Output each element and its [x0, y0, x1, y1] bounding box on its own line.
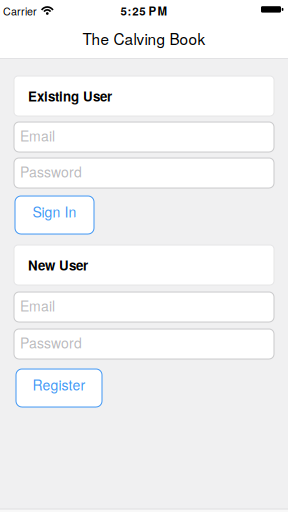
staticText: Password — [20, 161, 82, 181]
staticText: 5 — [120, 3, 126, 19]
staticText: P — [149, 3, 157, 19]
staticText: : — [127, 3, 131, 19]
staticText: Sign In — [32, 201, 76, 221]
staticText: Email — [20, 295, 55, 315]
button[interactable]: Email — [14, 292, 274, 322]
staticText: Password — [20, 332, 82, 352]
staticText: Email — [20, 125, 55, 145]
staticText: 5 — [139, 3, 145, 19]
button[interactable]: Register — [16, 369, 102, 407]
button[interactable]: Sign In — [15, 196, 94, 234]
staticText: Existing User — [28, 86, 112, 106]
button[interactable]: Password — [14, 329, 274, 359]
staticText: M — [157, 3, 167, 19]
staticText: Register — [32, 374, 85, 394]
button[interactable]: Email — [14, 122, 274, 152]
staticText: New User — [28, 255, 88, 275]
staticText: Carrier — [3, 3, 37, 18]
button[interactable]: Password — [14, 158, 274, 188]
staticText: The Calving Book — [82, 27, 205, 49]
staticText: 2 — [132, 3, 138, 19]
